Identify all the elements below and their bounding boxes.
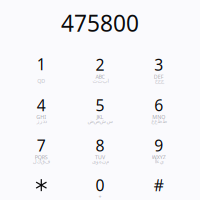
- staticText: +: [98, 193, 101, 200]
- staticText: DEF: [154, 73, 164, 80]
- staticText: 475800: [61, 8, 139, 38]
- staticText: ط‌ظ‌ع‌غ: [151, 118, 167, 124]
- staticText: ج‌ح‌خ: [154, 78, 163, 84]
- staticText: 4: [37, 94, 46, 116]
- staticText: ف‌ق‌ك‌ل: [32, 158, 50, 164]
- staticText: JKL: [96, 113, 103, 121]
- staticText: 2: [95, 54, 104, 75]
- staticText: 6: [154, 94, 163, 116]
- button[interactable]: [12, 170, 71, 200]
- button[interactable]: #: [129, 170, 188, 200]
- staticText: 0: [95, 174, 104, 196]
- staticText: م‌ن‌ه‌و‌ى: [91, 158, 108, 164]
- staticText: PQRS: [35, 154, 48, 161]
- button[interactable]: 0: [71, 170, 129, 200]
- button[interactable]: 8: [71, 129, 129, 170]
- staticText: GHI: [36, 113, 46, 121]
- button[interactable]: 1: [12, 49, 71, 89]
- staticText: TUV: [95, 154, 105, 161]
- staticText: WXYZ: [152, 154, 166, 161]
- staticText: QD: [37, 77, 45, 84]
- staticText: 8: [95, 135, 104, 156]
- staticText: ي‌ء‌آ‌أ: [154, 158, 163, 164]
- staticText: MNO: [152, 113, 165, 121]
- button[interactable]: 2: [71, 49, 129, 89]
- staticText: 1: [37, 53, 46, 75]
- button[interactable]: 6: [129, 89, 188, 129]
- staticText: 3: [154, 54, 163, 75]
- staticText: 9: [154, 135, 163, 156]
- button[interactable]: 5: [71, 89, 129, 129]
- button[interactable]: 475800: [0, 11, 200, 35]
- staticText: 7: [37, 135, 46, 156]
- button[interactable]: 3: [129, 49, 188, 89]
- staticText: ABC: [95, 73, 104, 80]
- button[interactable]: 7: [12, 129, 71, 170]
- button[interactable]: 4: [12, 89, 71, 129]
- staticText: #: [154, 174, 164, 196]
- button[interactable]: 9: [129, 129, 188, 170]
- staticText: س‌ش‌ص‌ض: [87, 118, 113, 124]
- staticText: د‌ذ‌ر‌ز: [36, 118, 46, 124]
- staticText: ا‌ب‌ت‌ث: [92, 78, 108, 84]
- staticText: 5: [95, 94, 104, 116]
